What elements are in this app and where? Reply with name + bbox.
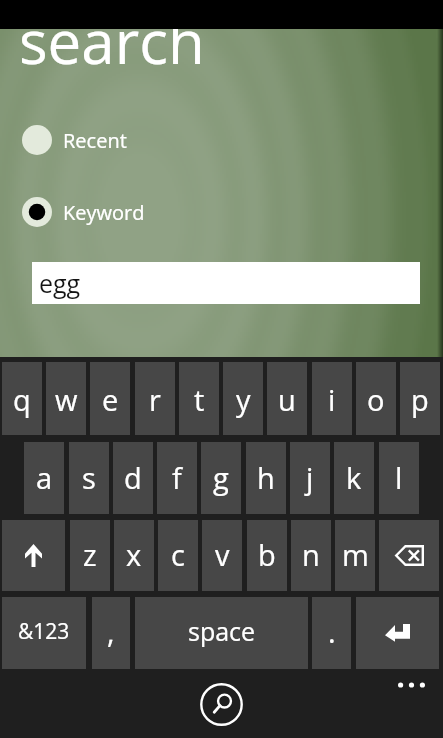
staticText: q — [13, 380, 31, 419]
staticText: a — [36, 458, 53, 497]
staticText: b — [258, 535, 276, 574]
staticText: n — [302, 535, 320, 574]
staticText: l — [395, 458, 403, 497]
staticText: v — [215, 535, 230, 574]
button[interactable]: n — [291, 520, 331, 591]
staticText: Recent — [63, 127, 127, 154]
button[interactable]: g — [201, 442, 241, 514]
staticText: s — [82, 458, 96, 497]
button[interactable]: z — [70, 520, 110, 591]
button[interactable]: More options — [390, 674, 433, 696]
staticText: Keyword — [63, 199, 145, 226]
button[interactable]: Keyword — [22, 197, 145, 227]
staticText: r — [149, 380, 161, 419]
button[interactable]: Enter — [356, 597, 439, 669]
staticText: &123 — [18, 617, 70, 646]
staticText: space — [188, 614, 256, 648]
button[interactable]: x — [114, 520, 154, 591]
staticText: f — [172, 458, 182, 497]
staticText: o — [367, 380, 385, 419]
staticText: x — [126, 535, 142, 574]
staticText: , — [107, 612, 115, 651]
button[interactable]: Shift — [2, 520, 65, 591]
staticText: c — [171, 535, 185, 574]
staticText: u — [278, 380, 296, 419]
staticText: h — [257, 458, 275, 497]
button[interactable]: e — [90, 362, 130, 435]
button[interactable]: v — [202, 520, 242, 591]
button[interactable]: i — [312, 362, 352, 435]
button[interactable]: s — [69, 442, 109, 514]
button[interactable]: m — [335, 520, 375, 591]
button[interactable]: Search — [200, 683, 243, 726]
staticText: search — [19, 0, 205, 82]
staticText: e — [102, 380, 119, 419]
button[interactable]: c — [158, 520, 198, 591]
button[interactable]: Recent — [22, 125, 127, 155]
staticText: j — [306, 458, 314, 497]
button[interactable]: q — [2, 362, 42, 435]
staticText: g — [213, 458, 229, 497]
button[interactable]: d — [113, 442, 153, 514]
button[interactable]: , — [92, 597, 130, 669]
staticText: i — [328, 380, 336, 419]
button[interactable]: k — [334, 442, 374, 514]
staticText: y — [236, 380, 251, 419]
button[interactable]: Backspace — [379, 520, 439, 591]
staticText: . — [328, 612, 336, 651]
staticText: t — [194, 380, 205, 419]
button[interactable]: space — [135, 597, 308, 669]
button[interactable]: y — [223, 362, 263, 435]
staticText: d — [124, 458, 142, 497]
button[interactable]: p — [400, 362, 440, 435]
button[interactable]: u — [267, 362, 307, 435]
button[interactable]: o — [356, 362, 396, 435]
staticText: egg — [39, 266, 81, 300]
button[interactable]: r — [135, 362, 175, 435]
button[interactable]: h — [246, 442, 286, 514]
button[interactable]: l — [379, 442, 419, 514]
button[interactable]: . — [312, 597, 351, 669]
staticText: m — [342, 535, 369, 574]
button[interactable]: w — [46, 362, 86, 435]
staticText: p — [411, 380, 429, 419]
button[interactable]: j — [290, 442, 330, 514]
staticText: z — [83, 535, 97, 574]
button[interactable]: &123 — [2, 597, 86, 669]
staticText: k — [346, 458, 362, 497]
button[interactable]: b — [247, 520, 287, 591]
button[interactable]: egg — [32, 262, 420, 304]
button[interactable]: a — [24, 442, 64, 514]
staticText: w — [55, 380, 78, 419]
button[interactable]: t — [179, 362, 219, 435]
button[interactable]: f — [157, 442, 197, 514]
